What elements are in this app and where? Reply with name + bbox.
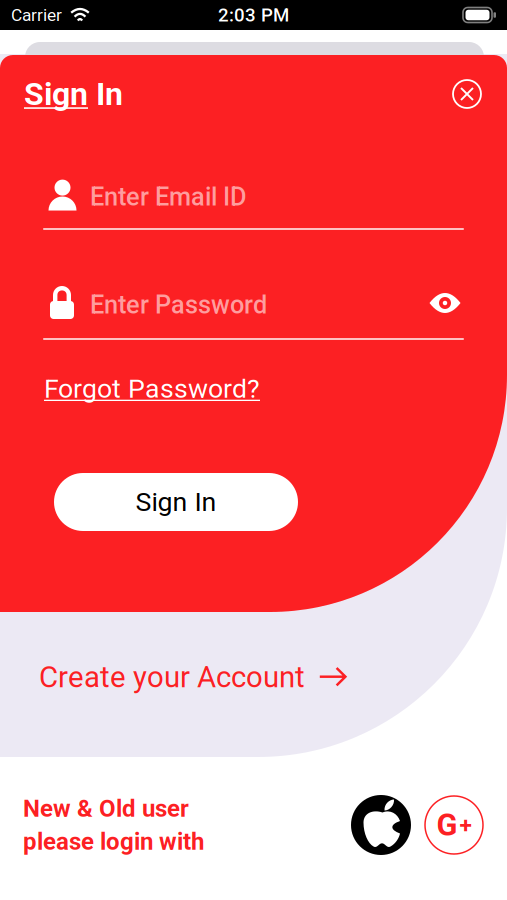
staticText: Forgot Password?	[44, 373, 260, 404]
staticText: 2:03 PM	[218, 4, 289, 26]
staticText: Enter Password	[90, 290, 267, 320]
staticText: please login with	[23, 827, 204, 856]
staticText: Enter Email ID	[90, 182, 247, 212]
button[interactable]: Create your Account	[39, 660, 347, 694]
staticText: Carrier	[11, 5, 62, 25]
staticText: Create your Account	[39, 660, 305, 694]
staticText: In	[88, 75, 123, 113]
staticText: New & Old user	[23, 794, 189, 822]
staticText: Sign	[24, 75, 88, 113]
button[interactable]: Sign In	[54, 473, 298, 531]
button[interactable]: Close	[451, 78, 483, 110]
button[interactable]: Forgot Password?	[44, 373, 260, 404]
button[interactable]: Sign in with Google	[424, 795, 484, 855]
staticText: G	[436, 807, 457, 843]
staticText: Sign In	[135, 486, 216, 518]
staticText: +	[459, 812, 471, 838]
button[interactable]: Sign in with Apple	[351, 795, 411, 855]
button[interactable]: Show password	[423, 283, 467, 323]
